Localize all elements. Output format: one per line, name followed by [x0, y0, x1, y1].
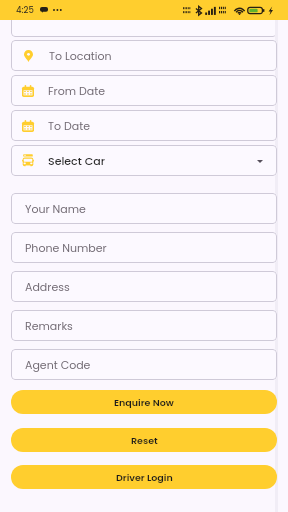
button[interactable]: Enquire Now: [11, 390, 277, 414]
button[interactable]: From Date: [11, 75, 277, 106]
staticText: Driver Login: [116, 471, 173, 484]
staticText: To Location: [49, 48, 112, 63]
staticText: Enquire Now: [114, 396, 174, 409]
staticText: Agent Code: [25, 357, 91, 372]
staticText: Reset: [131, 434, 158, 447]
button[interactable]: Select Car: [11, 145, 277, 176]
button[interactable]: Reset: [11, 428, 277, 452]
button[interactable]: Phone Number: [11, 232, 277, 263]
button[interactable]: Remarks: [11, 310, 277, 341]
staticText: Your Name: [25, 201, 86, 216]
button[interactable]: To Location: [11, 40, 277, 71]
staticText: Select Car: [48, 153, 105, 168]
button[interactable]: To Date: [11, 110, 277, 141]
staticText: 4:25: [16, 4, 34, 16]
button[interactable]: Your Name: [11, 193, 277, 224]
staticText: From Date: [48, 83, 105, 98]
button[interactable]: Driver Login: [11, 465, 277, 489]
staticText: To Date: [48, 118, 90, 133]
staticText: Phone Number: [25, 240, 107, 255]
staticText: Remarks: [25, 318, 73, 333]
button[interactable]: Address: [11, 271, 277, 302]
button[interactable]: Agent Code: [11, 349, 277, 380]
staticText: Address: [25, 279, 70, 294]
